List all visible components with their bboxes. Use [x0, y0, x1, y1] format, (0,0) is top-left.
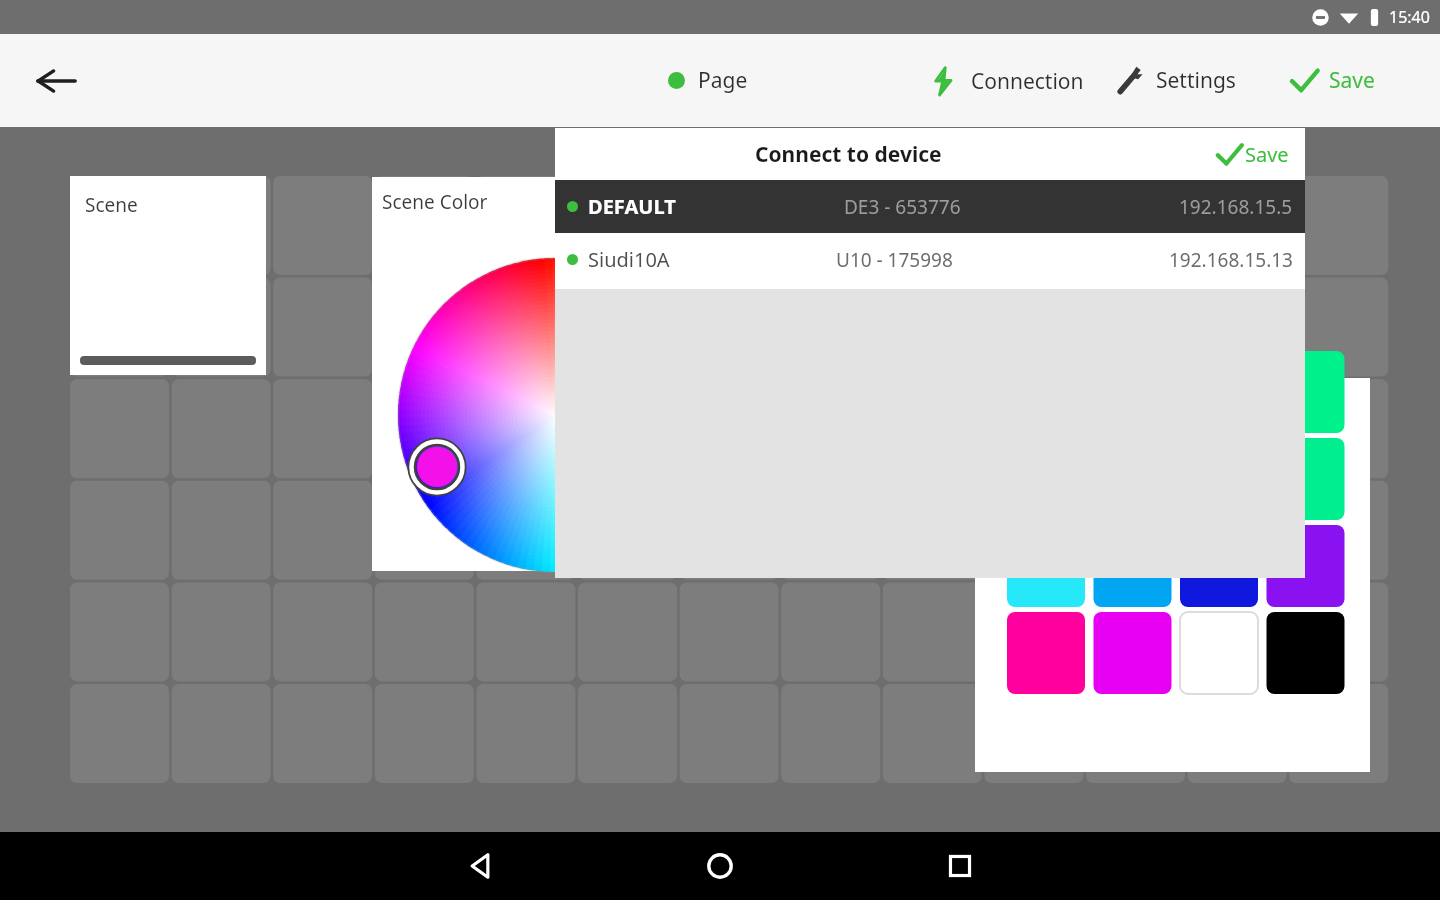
staticText: DEFAULT [588, 193, 676, 220]
button[interactable]: DEFAULT [555, 180, 1305, 233]
staticText: Page [698, 66, 748, 95]
button[interactable]: Home [692, 838, 748, 894]
staticText: Scene [85, 192, 138, 218]
staticText: Settings [1156, 66, 1236, 95]
button[interactable]: Back [452, 838, 508, 894]
staticText: Connect to device [755, 140, 942, 169]
staticText: DE3 - 653776 [844, 194, 961, 220]
staticText: Connection [971, 67, 1084, 96]
staticText: 15:40 [1389, 6, 1430, 28]
button[interactable]: Save [1210, 135, 1293, 174]
button[interactable]: Settings [1108, 55, 1242, 106]
staticText: 192.168.15.13 [1169, 247, 1293, 273]
staticText: 192.168.15.5 [1179, 194, 1293, 220]
button[interactable]: Siudi10A [555, 233, 1305, 286]
staticText: Scene Color [382, 189, 488, 215]
staticText: Siudi10A [588, 246, 670, 273]
staticText: U10 - 175998 [836, 247, 953, 273]
button[interactable] [975, 378, 1370, 772]
button[interactable]: Scene Color [372, 177, 672, 571]
button[interactable]: Scene [70, 176, 266, 375]
staticText: Save [1245, 141, 1289, 168]
button[interactable]: Connection [922, 55, 1090, 107]
button[interactable]: Back [32, 57, 80, 105]
staticText: Save [1329, 66, 1375, 95]
button[interactable]: Save [1282, 54, 1381, 107]
button[interactable]: Page [660, 56, 756, 105]
button[interactable]: Recents [932, 838, 988, 894]
